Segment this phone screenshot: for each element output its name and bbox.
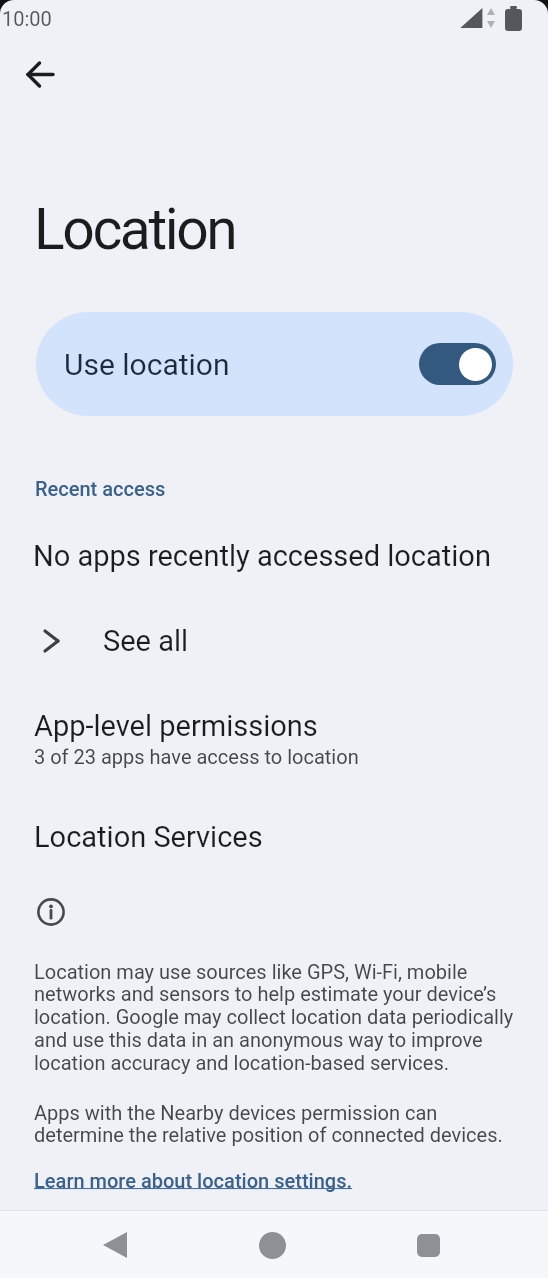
staticText: Use location bbox=[64, 347, 230, 382]
staticText: Location Services bbox=[34, 820, 263, 854]
button[interactable] bbox=[404, 1221, 452, 1269]
button[interactable] bbox=[91, 1221, 139, 1269]
staticText: Location bbox=[34, 196, 236, 263]
button[interactable]: Use location bbox=[36, 312, 513, 416]
staticText: 10:00 bbox=[2, 7, 52, 30]
button[interactable]: See all bbox=[0, 618, 548, 664]
button[interactable]: App-level permissions bbox=[0, 709, 548, 768]
staticText: See all bbox=[103, 624, 189, 658]
staticText: 3 of 23 apps have access to location bbox=[34, 745, 359, 768]
staticText: Recent access bbox=[35, 477, 166, 500]
button[interactable]: Learn more about location settings. bbox=[34, 1169, 353, 1192]
staticText: No apps recently accessed location bbox=[33, 539, 491, 573]
button[interactable] bbox=[248, 1221, 296, 1269]
staticText: Location may use sources like GPS, Wi-Fi… bbox=[34, 960, 514, 1075]
button[interactable] bbox=[16, 50, 64, 98]
staticText: Apps with the Nearby devices permission … bbox=[34, 1101, 503, 1147]
button[interactable]: Location Services bbox=[0, 820, 548, 854]
staticText: App-level permissions bbox=[34, 709, 318, 743]
